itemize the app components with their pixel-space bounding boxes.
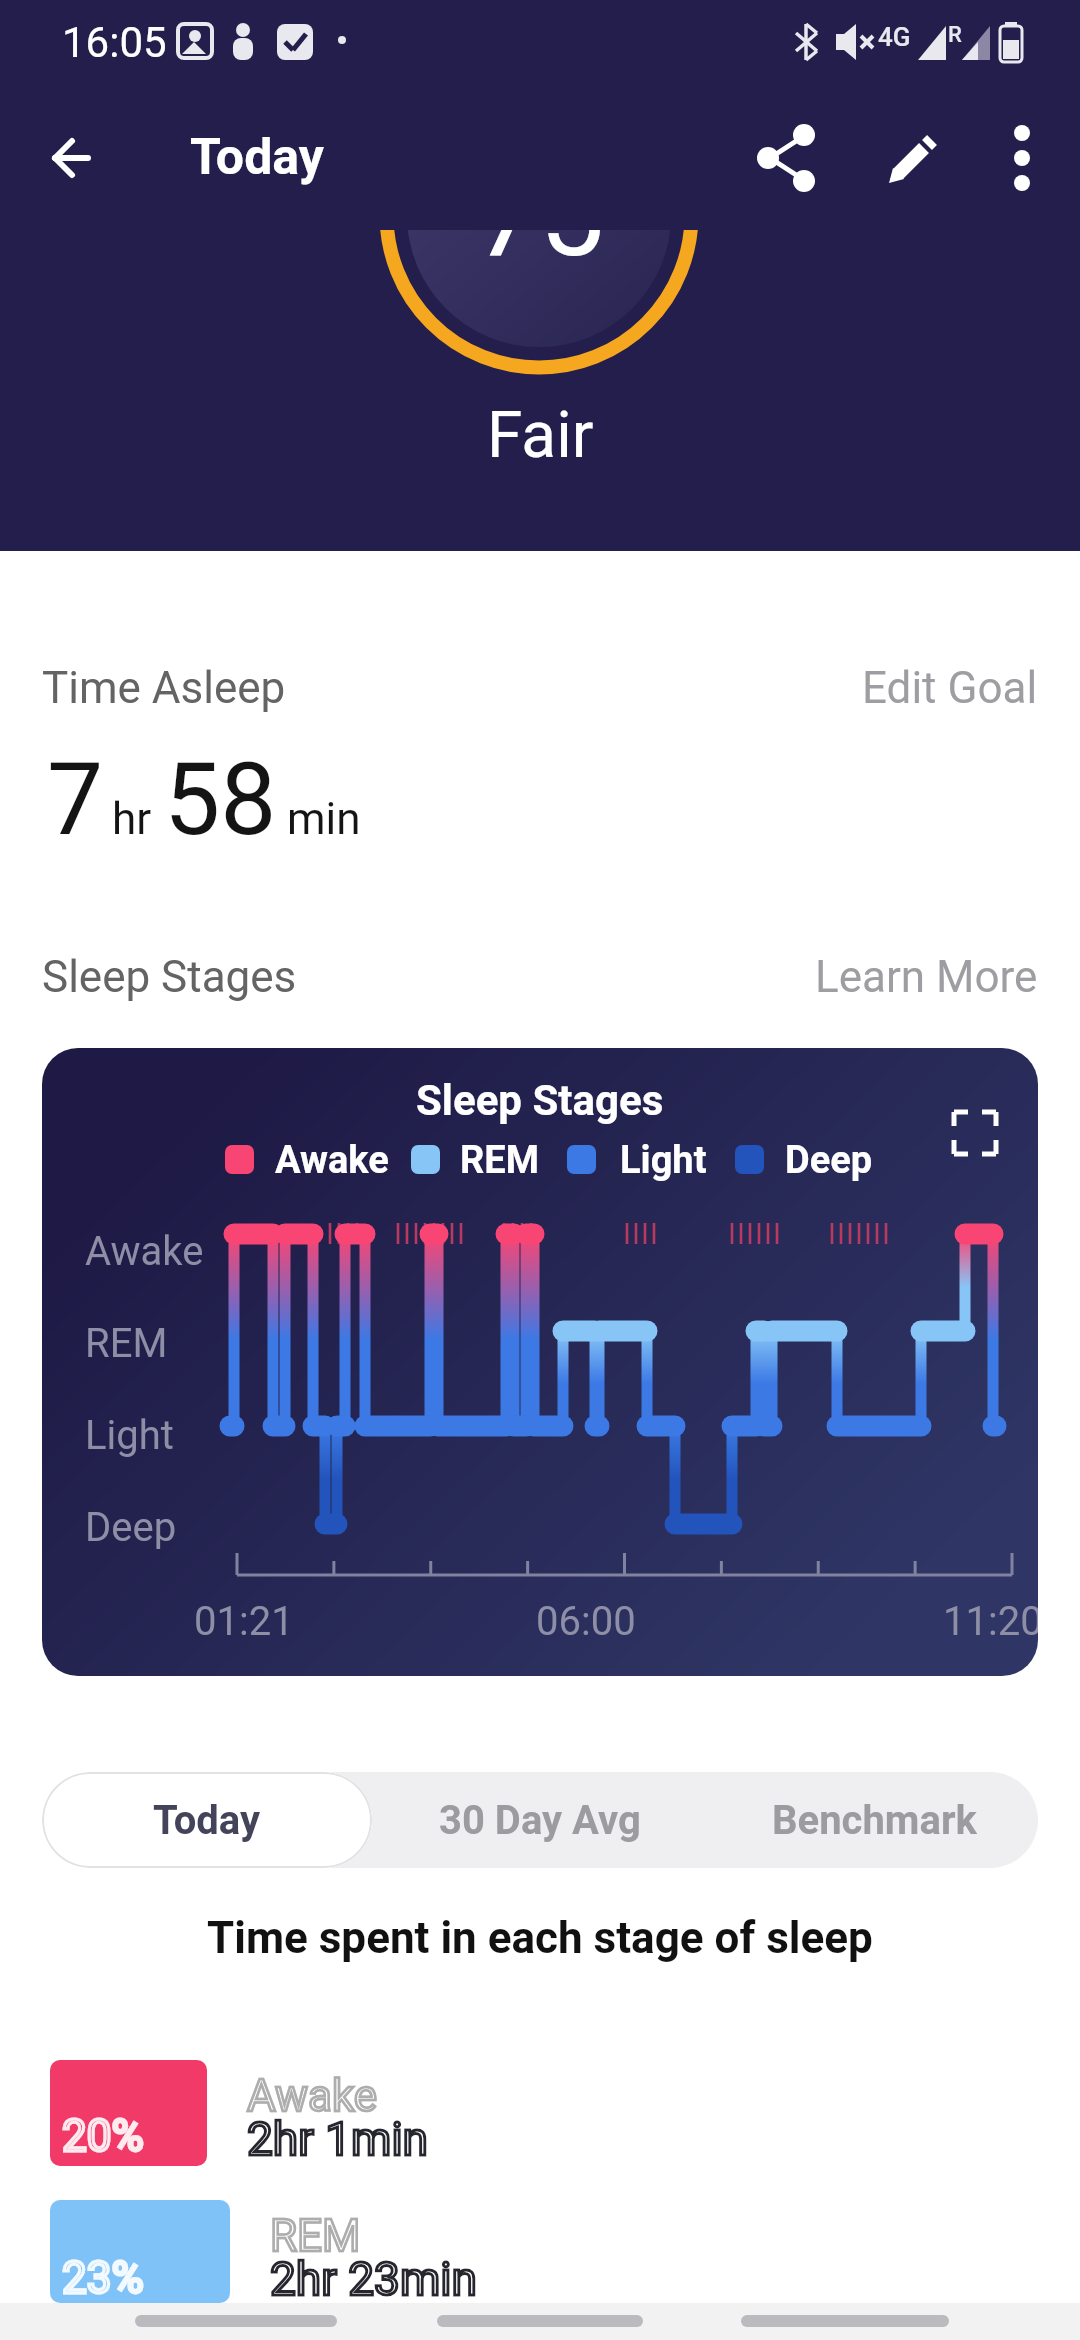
staticText: Benchmark xyxy=(772,1797,977,1844)
button[interactable] xyxy=(135,2315,337,2327)
staticText: 4G xyxy=(878,22,911,52)
staticText: Light xyxy=(85,1412,174,1459)
staticText: Sleep Stages xyxy=(416,1076,664,1125)
button[interactable]: Learn More xyxy=(815,951,1038,1003)
staticText: Fair xyxy=(487,398,594,473)
button[interactable] xyxy=(437,2315,643,2327)
staticText: 23% xyxy=(62,2252,144,2304)
staticText: min xyxy=(287,793,361,845)
staticText: Sleep Stages xyxy=(42,951,297,1003)
button[interactable] xyxy=(30,116,114,200)
staticText: 20% xyxy=(62,2110,144,2162)
staticText: REM xyxy=(85,1320,168,1367)
staticText: 2hr 23min xyxy=(270,2252,477,2306)
staticText: 75 xyxy=(475,230,605,283)
button[interactable] xyxy=(942,1100,1008,1166)
button[interactable]: Edit Goal xyxy=(862,662,1038,714)
button[interactable] xyxy=(741,2315,949,2327)
staticText: 2hr 1min xyxy=(247,2112,428,2166)
button[interactable] xyxy=(986,122,1058,194)
staticText: 06:00 xyxy=(536,1598,636,1645)
staticText: Deep xyxy=(785,1138,873,1183)
staticText: REM xyxy=(460,1138,539,1183)
staticText: 01:21 xyxy=(194,1598,294,1645)
staticText: Awake xyxy=(247,2070,378,2122)
staticText: REM xyxy=(270,2210,361,2262)
staticText: Awake xyxy=(85,1228,204,1275)
staticText: 58 xyxy=(164,741,277,858)
button[interactable]: 30 Day Avg xyxy=(370,1772,710,1868)
button[interactable] xyxy=(752,122,824,194)
staticText: hr xyxy=(112,793,152,845)
staticText: 30 Day Avg xyxy=(439,1797,641,1844)
staticText: 16:05 xyxy=(62,18,167,67)
staticText: Today xyxy=(153,1797,261,1844)
staticText: R xyxy=(948,22,962,48)
staticText: Time spent in each stage of sleep xyxy=(207,1912,873,1964)
staticText: 11:20 xyxy=(943,1598,1038,1645)
button[interactable]: Today xyxy=(42,1772,372,1868)
staticText: Light xyxy=(620,1138,707,1183)
staticText: Deep xyxy=(85,1504,177,1551)
button[interactable]: Benchmark xyxy=(710,1772,1038,1868)
staticText: Awake xyxy=(275,1138,389,1183)
staticText: Time Asleep xyxy=(42,662,286,714)
staticText: 7 xyxy=(47,741,104,858)
button[interactable] xyxy=(876,122,948,194)
staticText: Today xyxy=(190,128,324,187)
